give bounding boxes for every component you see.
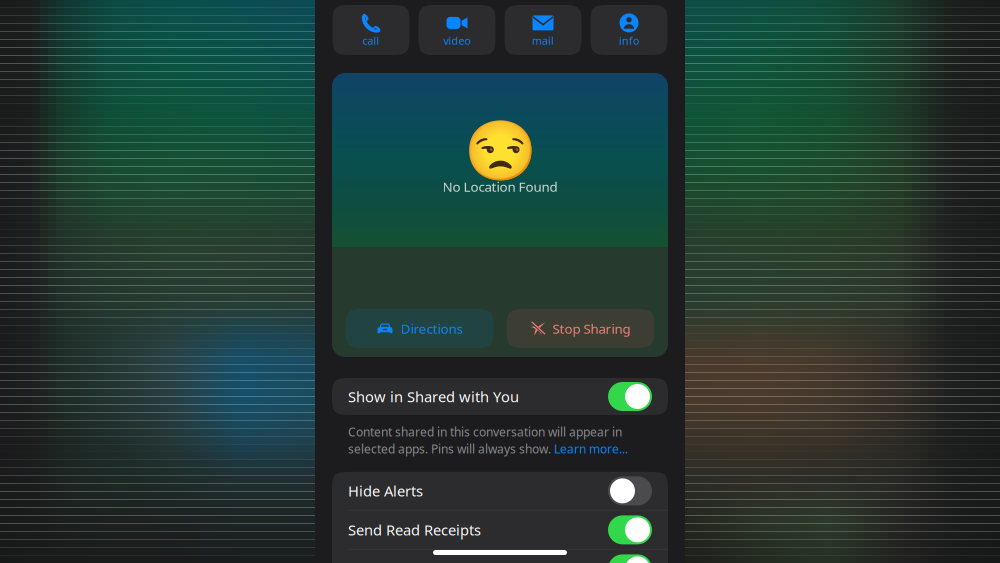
button[interactable]: Share Focus Status — [332, 550, 668, 563]
staticText: mail — [532, 33, 554, 48]
button[interactable]: mail — [504, 5, 581, 55]
staticText: Stop Sharing — [552, 320, 630, 337]
button[interactable]: video — [418, 5, 495, 55]
staticText: call — [362, 33, 379, 48]
staticText: Content shared in this conversation will… — [348, 424, 622, 440]
staticText: Show in Shared with You — [348, 387, 519, 406]
staticText: Hide Alerts — [348, 481, 423, 501]
button[interactable]: Send Read Receipts — [332, 511, 668, 549]
staticText: selected apps. Pins will always show. — [348, 441, 554, 457]
button[interactable]: Directions — [345, 309, 493, 348]
staticText: Directions — [400, 320, 462, 337]
button[interactable]: Show in Shared with You — [332, 378, 668, 415]
staticText: info — [619, 33, 639, 48]
button[interactable]: Learn more... — [554, 441, 628, 457]
staticText: 😒 — [463, 117, 536, 184]
button[interactable]: call — [332, 5, 409, 55]
staticText: No Location Found — [442, 178, 557, 195]
button[interactable]: info — [590, 5, 667, 55]
button[interactable]: Hide Alerts — [332, 472, 668, 510]
button[interactable]: Stop Sharing — [506, 309, 654, 348]
staticText: video — [443, 33, 470, 48]
staticText: Send Read Receipts — [348, 520, 481, 540]
staticText: Learn more... — [554, 441, 628, 457]
